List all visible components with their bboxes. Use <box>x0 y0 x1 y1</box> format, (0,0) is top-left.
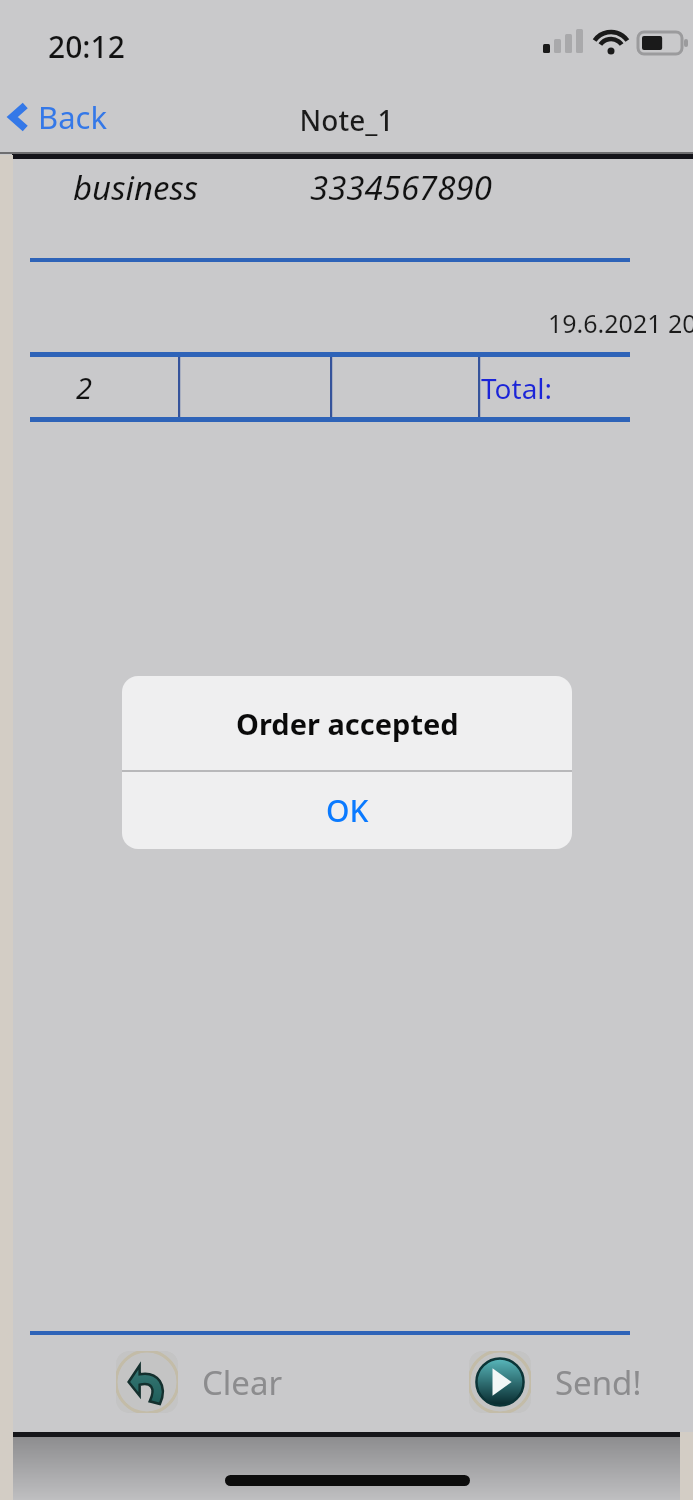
staticText: Order accepted <box>236 704 459 743</box>
button[interactable]: OK <box>122 772 572 849</box>
button[interactable]: Back <box>6 92 136 142</box>
staticText: OK <box>326 790 369 831</box>
button[interactable]: Send! <box>469 1349 642 1415</box>
staticText: 2 <box>76 368 92 407</box>
staticText: 20:12 <box>48 26 125 67</box>
staticText: business <box>73 165 199 210</box>
staticText: 19.6.2021 20: <box>548 306 693 340</box>
staticText: Send! <box>555 1360 642 1405</box>
button[interactable]: Clear <box>116 1349 283 1415</box>
staticText: Clear <box>202 1360 283 1405</box>
staticText: 3334567890 <box>310 165 492 210</box>
staticText: Total: <box>481 369 553 407</box>
staticText: Note_1 <box>0 101 693 139</box>
staticText: Back <box>38 96 107 138</box>
